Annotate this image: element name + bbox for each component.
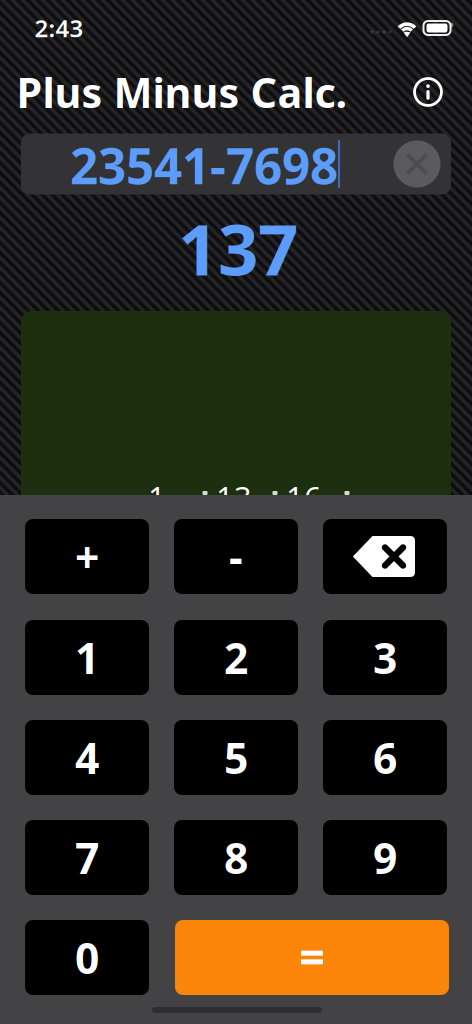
staticText: 16 xyxy=(286,477,322,517)
staticText: + xyxy=(75,528,99,585)
button[interactable]: Clear xyxy=(393,140,440,187)
button[interactable]: 9 xyxy=(323,820,447,895)
staticText: 3 xyxy=(373,629,397,686)
staticText: 1 xyxy=(148,477,166,517)
button[interactable]: Delete xyxy=(323,519,447,594)
button[interactable]: Equals xyxy=(175,920,449,995)
button[interactable]: - xyxy=(174,519,298,594)
button[interactable]: 3 xyxy=(323,620,447,695)
staticText: Plus Minus Calc. xyxy=(16,65,347,119)
staticText: 1 xyxy=(75,629,99,686)
button[interactable]: Info xyxy=(406,70,450,114)
staticText: 9 xyxy=(373,829,397,886)
staticText: 23541-7698 xyxy=(70,132,338,198)
staticText: 0 xyxy=(75,929,99,986)
staticText: 6 xyxy=(373,729,397,786)
button[interactable]: 2 xyxy=(174,620,298,695)
staticText: 4 xyxy=(75,729,99,786)
button[interactable]: 6 xyxy=(323,720,447,795)
staticText: 2:43 xyxy=(34,12,83,44)
staticText: 7 xyxy=(75,829,99,886)
staticText: 5 xyxy=(224,729,248,786)
button[interactable]: 8 xyxy=(174,820,298,895)
button[interactable]: 5 xyxy=(174,720,298,795)
staticText: 2 xyxy=(224,629,248,686)
button[interactable]: 7 xyxy=(25,820,149,895)
button[interactable]: + xyxy=(25,519,149,594)
staticText: - xyxy=(229,528,243,585)
staticText: 137 xyxy=(178,201,298,295)
button[interactable]: 0 xyxy=(25,920,149,995)
staticText: 8 xyxy=(224,829,248,886)
button[interactable]: 1 xyxy=(25,620,149,695)
staticText: 13 xyxy=(216,477,252,517)
button[interactable]: 4 xyxy=(25,720,149,795)
